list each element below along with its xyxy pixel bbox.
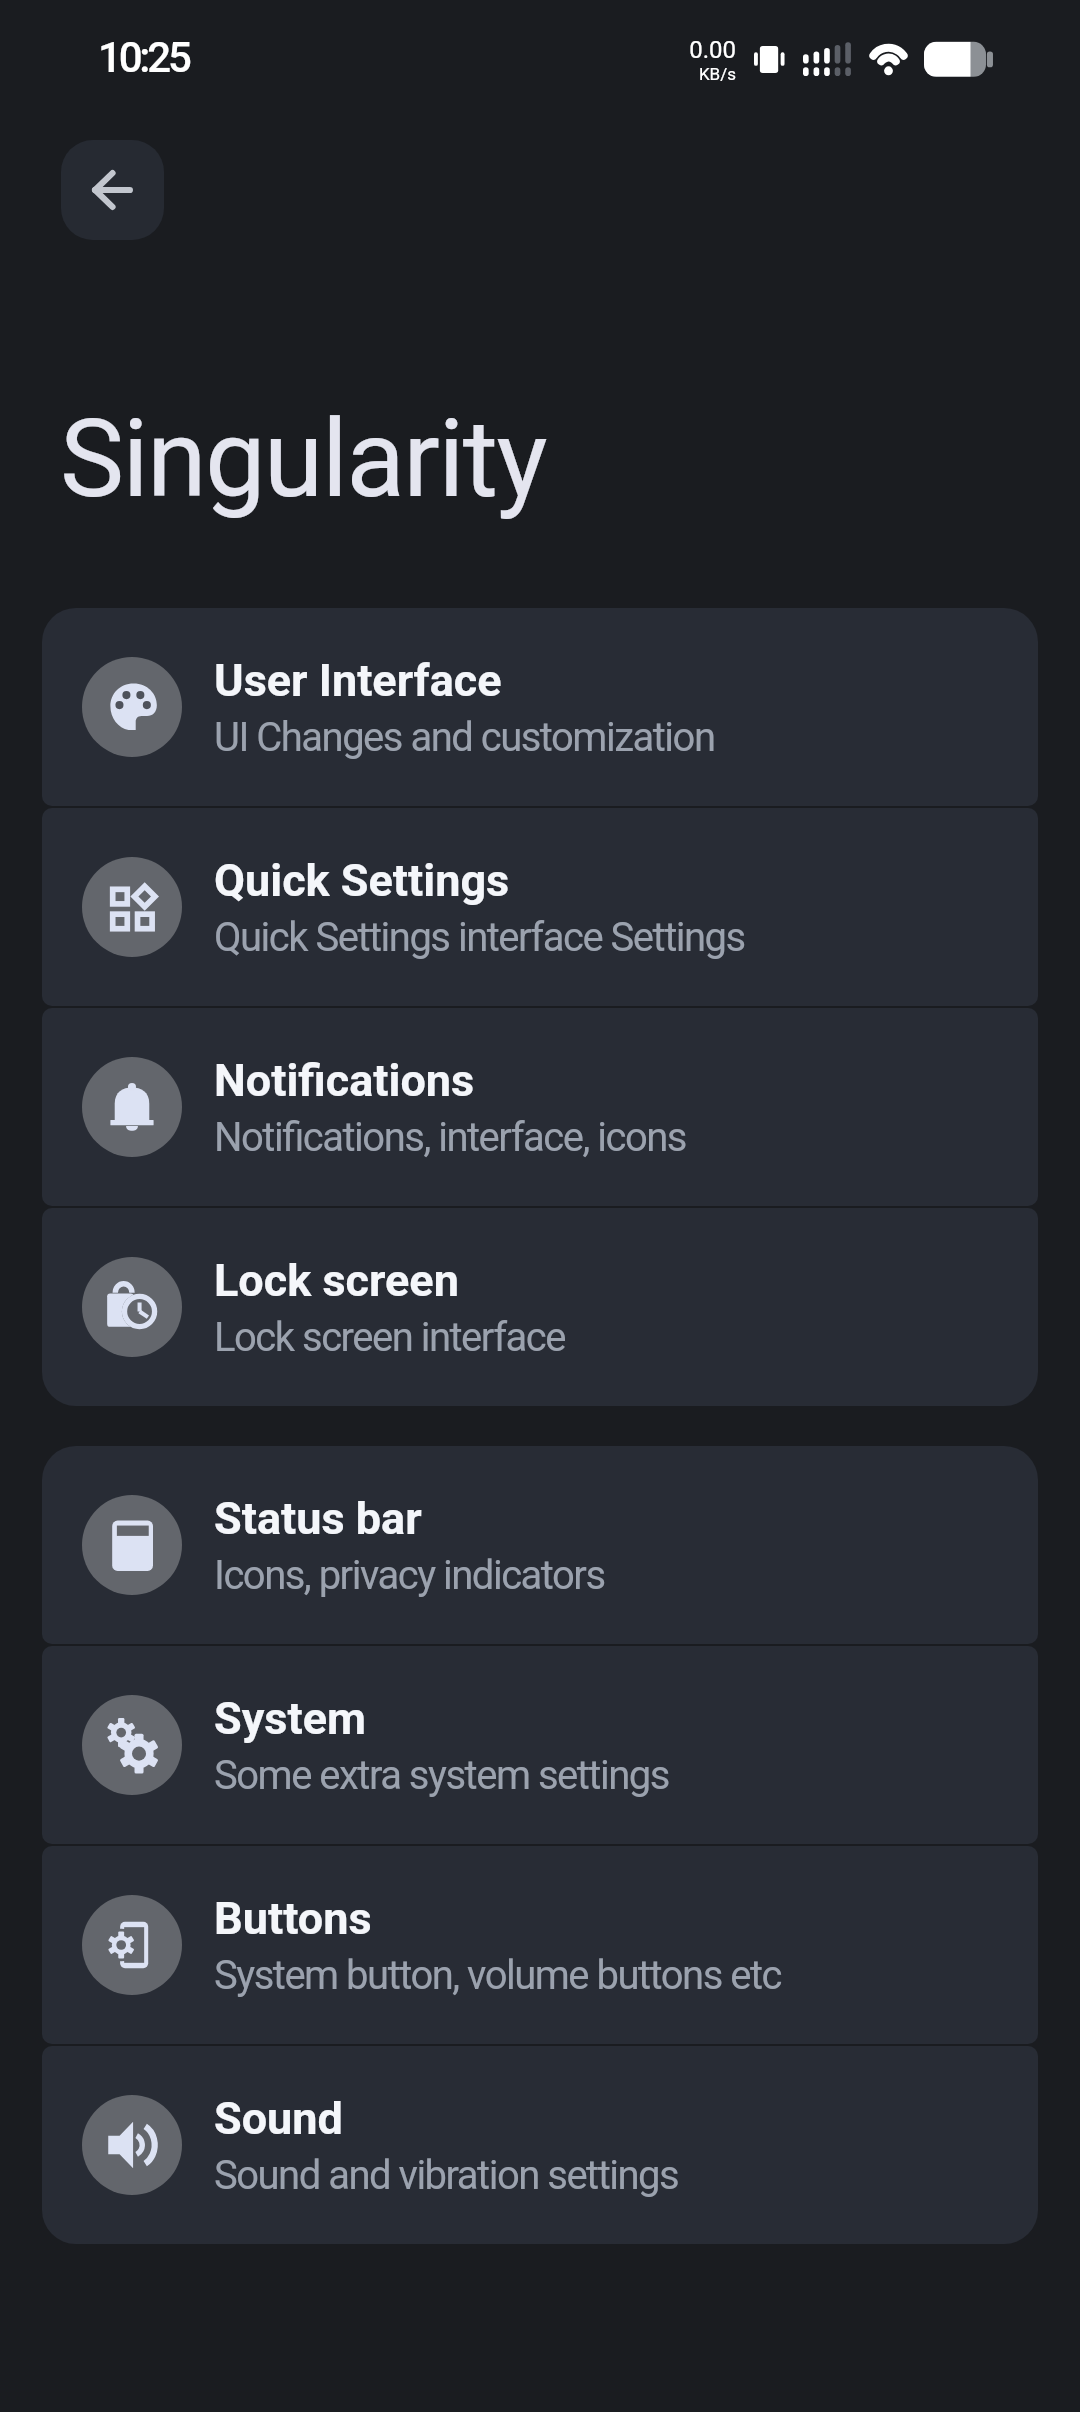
staticText: Sound and vibration settings [214, 2152, 679, 2199]
button[interactable]: User Interface [42, 608, 1038, 806]
staticText: Singularity [60, 396, 546, 523]
staticText: Sound [214, 2092, 343, 2145]
staticText: Some extra system settings [214, 1752, 669, 1799]
button[interactable]: Back [61, 140, 164, 240]
staticText: Lock screen interface [214, 1314, 565, 1361]
button[interactable]: Notifications [42, 1008, 1038, 1206]
button[interactable]: Buttons [42, 1846, 1038, 2044]
staticText: Quick Settings interface Settings [214, 914, 745, 961]
staticText: Quick Settings [214, 854, 510, 907]
staticText: Buttons [214, 1892, 372, 1945]
button[interactable]: Status bar [42, 1446, 1038, 1644]
staticText: Notifications, interface, icons [214, 1114, 686, 1161]
staticText: System [214, 1692, 366, 1745]
button[interactable]: System [42, 1646, 1038, 1844]
button[interactable]: Quick Settings [42, 808, 1038, 1006]
staticText: Status bar [214, 1492, 422, 1545]
staticText: Notifications [214, 1054, 475, 1107]
staticText: System button, volume buttons etc [214, 1952, 781, 1999]
staticText: Icons, privacy indicators [214, 1552, 605, 1599]
button[interactable]: Lock screen [42, 1208, 1038, 1406]
button[interactable]: Sound [42, 2046, 1038, 2244]
staticText: 0.00 [689, 36, 736, 64]
staticText: User Interface [214, 654, 502, 707]
staticText: Lock screen [214, 1254, 459, 1307]
staticText: UI Changes and customization [214, 714, 715, 761]
staticText: 10:25 [98, 33, 189, 82]
staticText: KB/s [698, 64, 736, 84]
